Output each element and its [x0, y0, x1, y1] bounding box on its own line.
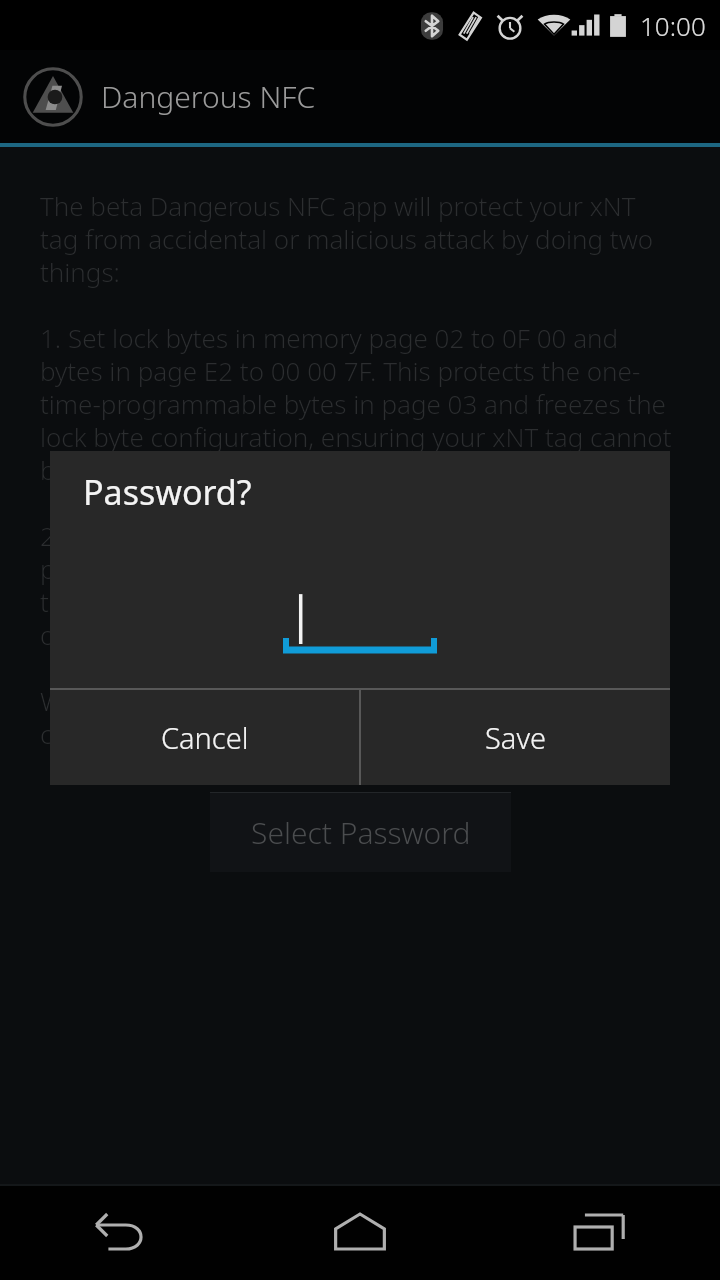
staticText: The beta Dangerous NFC app will protect … [40, 188, 680, 290]
button[interactable]: Save [361, 690, 670, 785]
staticText: Cancel [161, 718, 249, 757]
button[interactable]: Cancel [50, 690, 359, 785]
staticText: Select Password [251, 812, 471, 853]
button[interactable] [283, 589, 437, 653]
staticText: 10:00 [640, 8, 706, 43]
staticText: Warning: do not forget or lose your pass… [40, 683, 680, 752]
button[interactable]: Back [0, 1184, 240, 1280]
button[interactable]: Select Password [210, 792, 511, 872]
button[interactable]: Home [240, 1184, 480, 1280]
button[interactable]: Recent apps [480, 1184, 720, 1280]
staticText: Dangerous NFC [101, 76, 316, 117]
staticText: Password? [83, 469, 252, 515]
staticText: 1. Set lock bytes in memory page 02 to 0… [40, 320, 680, 488]
staticText: Save [485, 718, 546, 757]
staticText: 2. Set a 32 bit password and enable pass… [40, 518, 680, 653]
